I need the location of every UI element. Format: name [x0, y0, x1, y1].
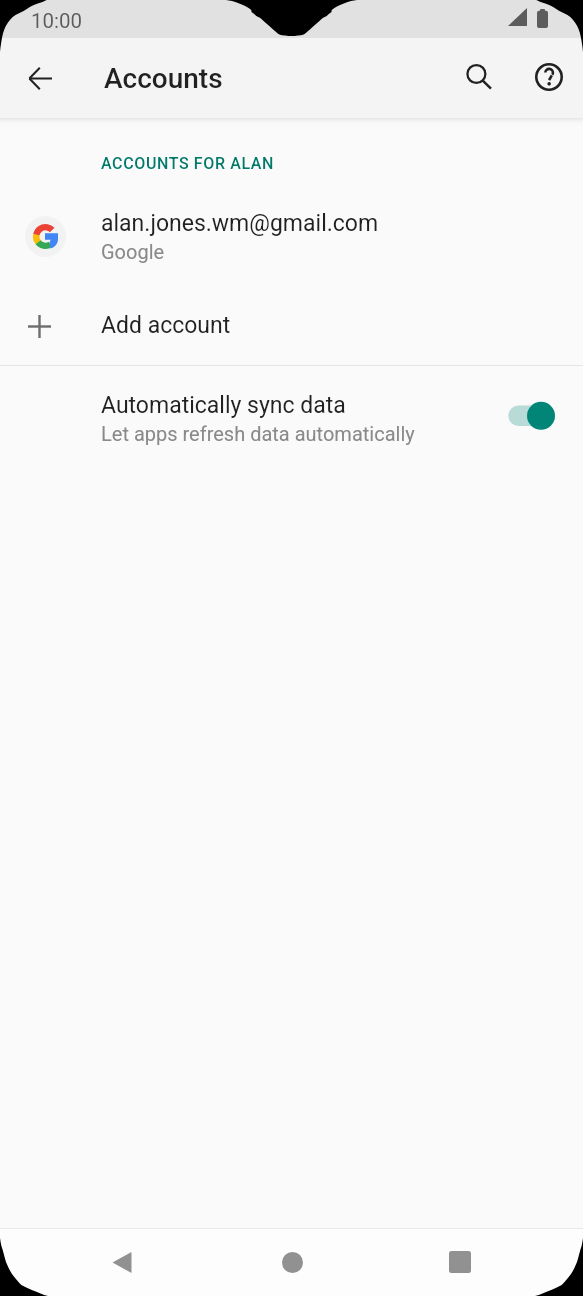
button[interactable]: Search [455, 53, 503, 101]
button[interactable]: Automatically sync data [0, 366, 583, 466]
staticText: Google [101, 240, 165, 263]
button[interactable]: Navigate up [16, 54, 64, 102]
button[interactable]: Recent apps [430, 1232, 490, 1292]
staticText: Accounts [104, 62, 223, 95]
staticText: ACCOUNTS FOR ALAN [101, 154, 275, 173]
staticText: 10:00 [31, 9, 83, 33]
staticText: Automatically sync data [101, 392, 346, 419]
button[interactable]: Help [525, 53, 573, 101]
staticText: Add account [101, 312, 231, 339]
button[interactable]: Back [92, 1232, 152, 1292]
staticText: Let apps refresh data automatically [101, 422, 415, 445]
button[interactable]: Home [262, 1232, 322, 1292]
staticText: alan.jones.wm@gmail.com [101, 210, 379, 237]
button[interactable]: alan.jones.wm@gmail.com [0, 190, 583, 287]
button[interactable]: Add account [0, 287, 583, 365]
